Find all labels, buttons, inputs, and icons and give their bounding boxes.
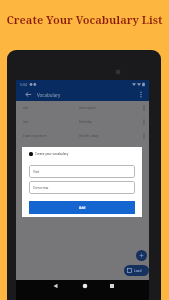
staticText: I want to go there [23, 134, 47, 138]
staticText: Create Your Vocabulary List [6, 12, 163, 27]
staticText: the lefts, alway [79, 134, 99, 138]
staticText: Create your vocabulary [35, 152, 69, 156]
button[interactable]: Tomorrow [29, 181, 135, 194]
button[interactable]: Load [124, 265, 149, 276]
button[interactable]: Visit [29, 165, 135, 178]
button[interactable]: Add vocabulary [136, 250, 147, 261]
staticText: Vocabulary [37, 92, 61, 98]
staticText: Visit [33, 170, 40, 174]
staticText: Yesterday [79, 120, 92, 124]
button[interactable]: I want to go there [16, 129, 149, 143]
staticText: visit [23, 106, 29, 110]
staticText: Add [79, 205, 86, 210]
staticText: love [23, 120, 29, 124]
staticText: Tomorrow [33, 186, 49, 190]
staticText: 5:04 [20, 82, 27, 87]
button[interactable]: Back [24, 90, 33, 99]
button[interactable]: More options [136, 90, 145, 99]
staticText: Load [134, 269, 142, 273]
staticText: lorem ipsum [79, 106, 96, 110]
button[interactable]: Add [29, 201, 135, 214]
